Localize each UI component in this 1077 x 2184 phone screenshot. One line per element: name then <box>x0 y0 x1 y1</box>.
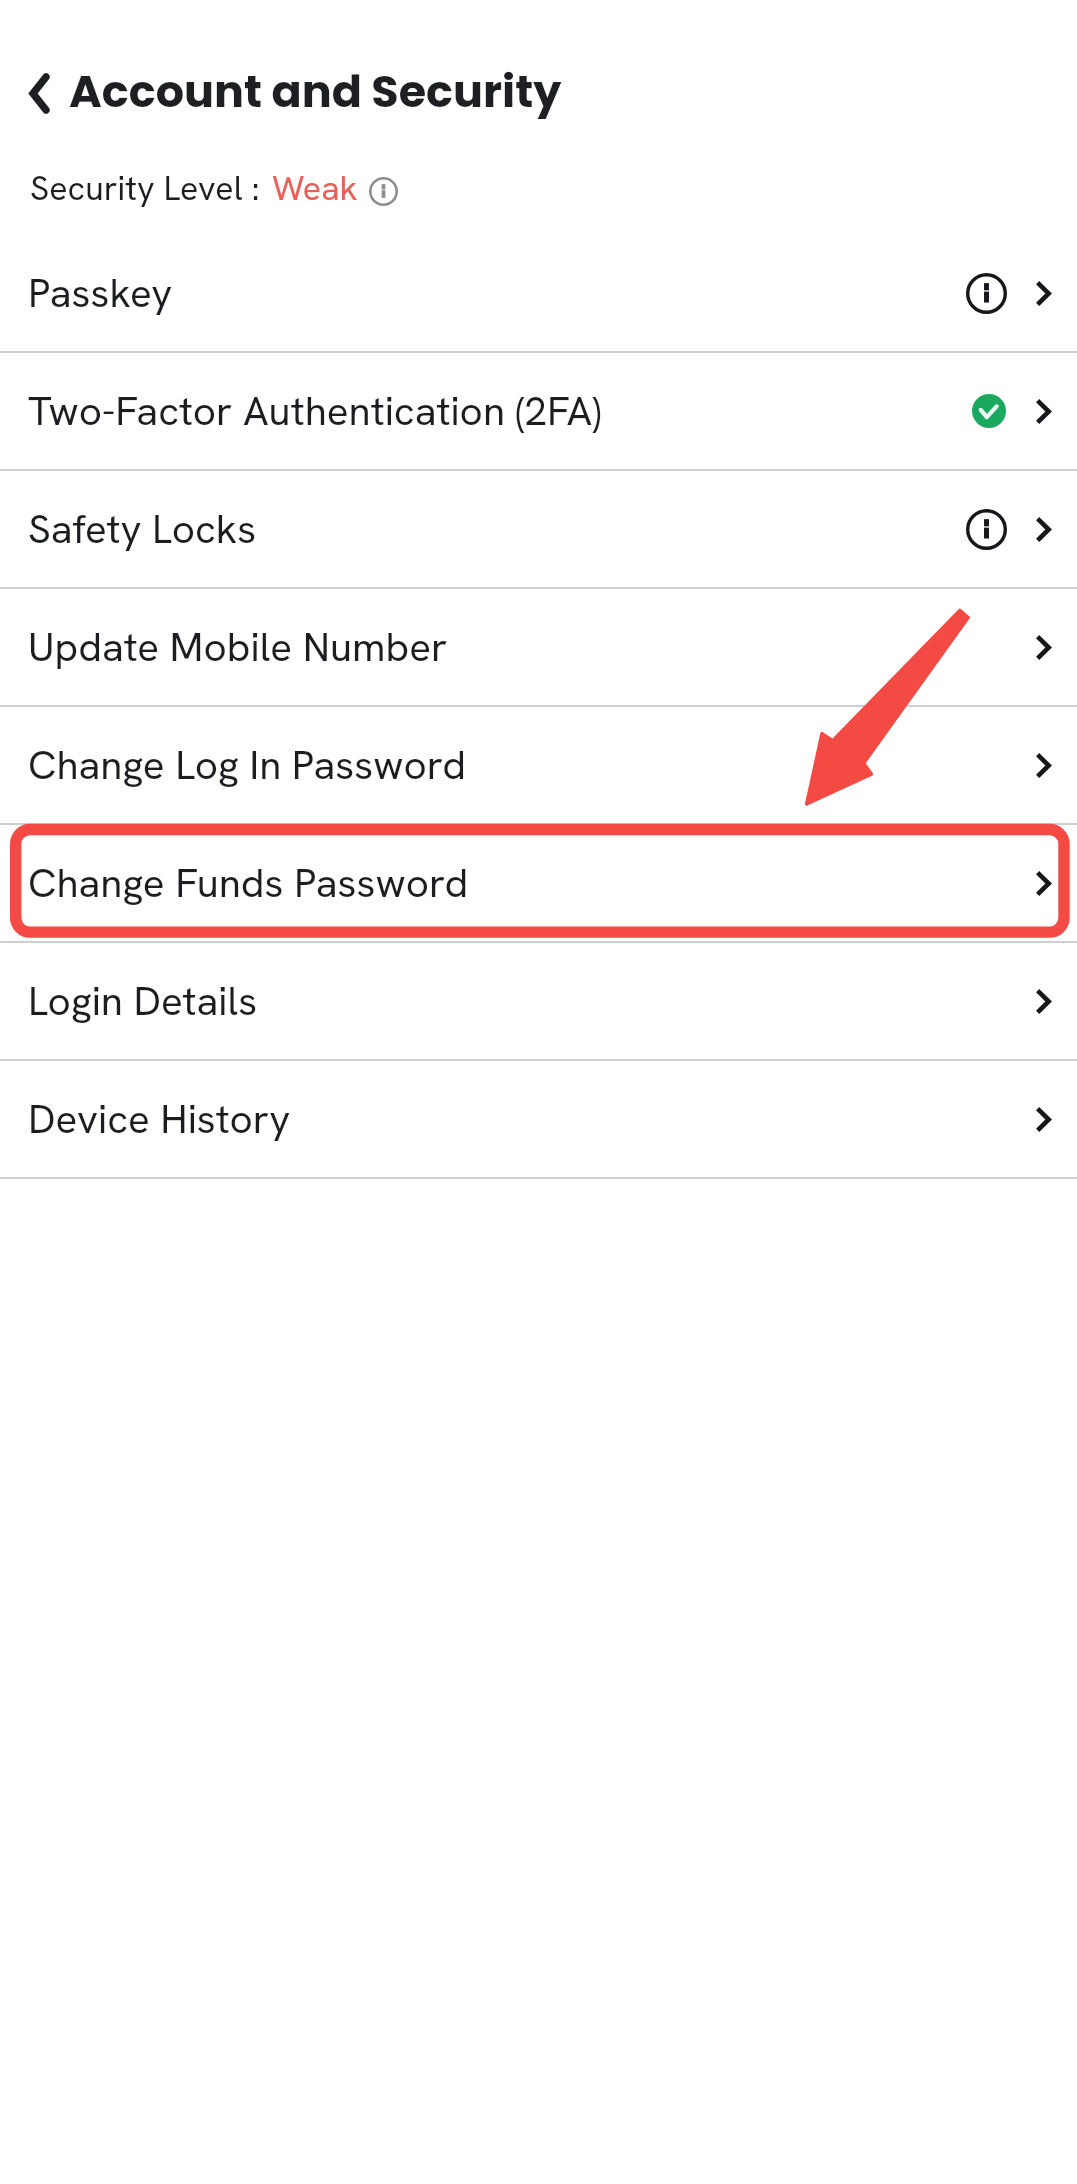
staticText: Passkey <box>28 267 173 320</box>
button[interactable]: Safety Locks <box>0 471 1077 589</box>
staticText: Account and Security <box>69 60 562 122</box>
staticText: Login Details <box>28 975 258 1028</box>
staticText: Weak <box>272 166 358 210</box>
button[interactable]: Change Funds Password <box>0 825 1077 943</box>
button[interactable]: More info about Safety Locks <box>966 509 1007 550</box>
staticText: Safety Locks <box>28 503 257 556</box>
staticText: Two-Factor Authentication (2FA) <box>28 385 602 438</box>
button[interactable]: Back <box>0 60 1077 122</box>
button[interactable]: Device History <box>0 1061 1077 1179</box>
button[interactable]: Passkey <box>0 235 1077 353</box>
other: Enabled <box>972 394 1006 428</box>
button[interactable]: More info about Passkey <box>966 273 1007 314</box>
staticText: Change Funds Password <box>28 857 469 910</box>
button[interactable]: Two-Factor Authentication (2FA) <box>0 353 1077 471</box>
staticText: Device History <box>28 1093 291 1146</box>
staticText: Security Level : <box>30 166 260 210</box>
button[interactable]: About security level <box>369 177 398 206</box>
button[interactable]: Login Details <box>0 943 1077 1061</box>
button[interactable]: Change Log In Password <box>0 707 1077 825</box>
other: Back <box>29 73 50 114</box>
button[interactable]: Update Mobile Number <box>0 589 1077 707</box>
staticText: Change Log In Password <box>28 739 466 792</box>
staticText: Update Mobile Number <box>28 621 448 674</box>
